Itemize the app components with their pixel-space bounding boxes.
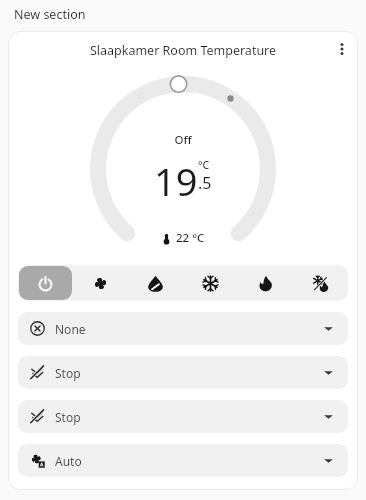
button[interactable]: None: [18, 312, 348, 345]
staticText: None: [55, 321, 86, 337]
button[interactable]: Heat cool: [294, 266, 347, 300]
staticText: Auto: [55, 453, 82, 469]
button[interactable]: Dry: [129, 266, 182, 300]
staticText: Stop: [55, 365, 81, 381]
button[interactable]: Heat: [239, 266, 292, 300]
staticText: New section: [14, 6, 86, 23]
staticText: Off: [8, 132, 358, 148]
button[interactable]: Auto: [18, 444, 348, 477]
button[interactable]: Cool: [184, 266, 237, 300]
button[interactable]: Stop: [18, 356, 348, 389]
button[interactable]: Slaapkamer Room Temperature: [8, 42, 358, 59]
button[interactable]: More options: [326, 33, 358, 65]
staticText: 22 °C: [176, 230, 205, 246]
button[interactable]: Power: [19, 266, 72, 300]
staticText: °C: [198, 158, 210, 172]
staticText: 19: [154, 155, 198, 207]
staticText: .5: [198, 172, 212, 194]
button[interactable]: Stop: [18, 400, 348, 433]
staticText: Stop: [55, 409, 81, 425]
button[interactable]: Fan only: [74, 266, 127, 300]
